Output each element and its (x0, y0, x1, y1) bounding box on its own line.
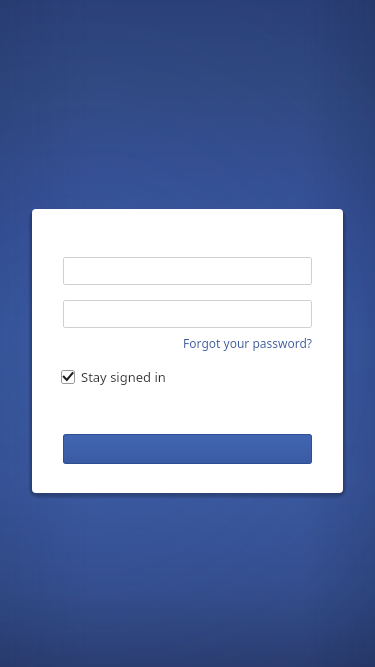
button[interactable]: Password (63, 300, 312, 328)
button[interactable]: Forgot your password? (182, 333, 312, 353)
button[interactable]: Email or phone (63, 257, 312, 285)
staticText: Forgot your password? (183, 335, 312, 351)
button[interactable]: Stay signed in (61, 366, 166, 388)
staticText: Stay signed in (81, 368, 166, 386)
button[interactable]: Log in (63, 434, 312, 464)
